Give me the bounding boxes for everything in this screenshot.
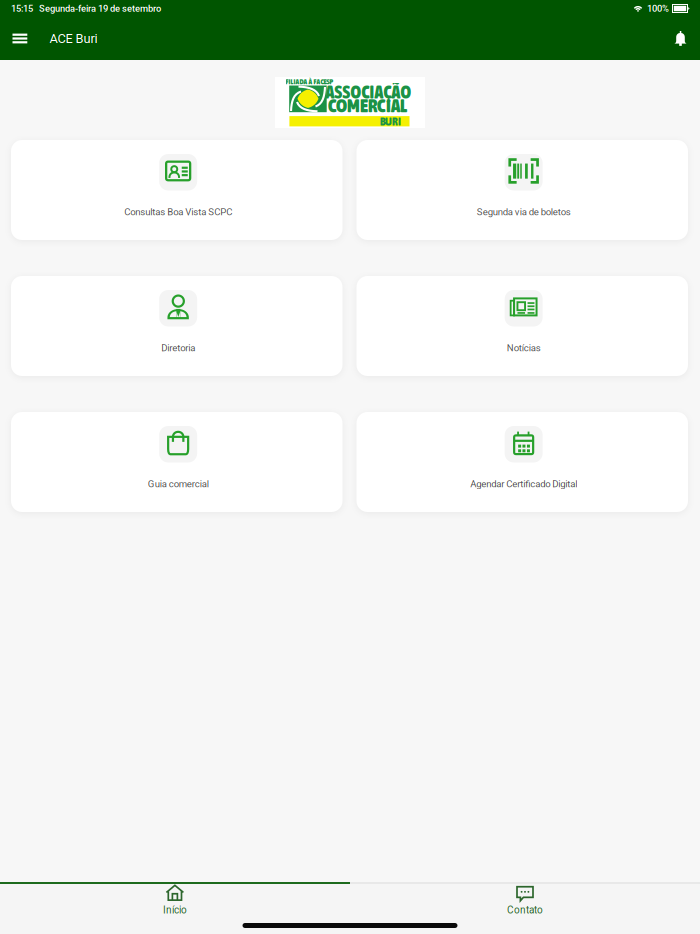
staticText: BURI xyxy=(380,115,401,128)
button[interactable]: Guia comercial xyxy=(11,412,342,512)
staticText: Contato xyxy=(507,904,543,916)
staticText: Agendar Certificado Digital xyxy=(470,478,577,490)
staticText: Segunda-feira 19 de setembro xyxy=(39,3,161,14)
button[interactable]: Segunda via de boletos xyxy=(356,140,688,240)
staticText: ASSOCIAÇÃO xyxy=(325,82,411,102)
staticText: 100% xyxy=(647,3,669,14)
button[interactable]: Notícias xyxy=(356,276,688,376)
button[interactable]: Início xyxy=(0,881,350,920)
button[interactable]: Notificações xyxy=(667,24,693,52)
staticText: Notícias xyxy=(507,342,541,354)
button[interactable]: Agendar Certificado Digital xyxy=(356,412,688,512)
button[interactable]: Contato xyxy=(350,881,700,920)
button[interactable]: Consultas Boa Vista SCPC xyxy=(11,140,342,240)
staticText: Início xyxy=(163,904,187,916)
staticText: Segunda via de boletos xyxy=(477,206,571,218)
staticText: ACE Buri xyxy=(49,31,97,46)
staticText: Consultas Boa Vista SCPC xyxy=(124,206,232,218)
staticText: 15:15 xyxy=(11,3,33,14)
staticText: COMERCIAL xyxy=(328,95,407,116)
button[interactable]: Diretoria xyxy=(11,276,342,376)
staticText: FILIADA À FACESP xyxy=(285,77,333,86)
staticText: Diretoria xyxy=(161,342,195,354)
staticText: Guia comercial xyxy=(148,478,209,490)
button[interactable]: Menu xyxy=(12,24,38,52)
